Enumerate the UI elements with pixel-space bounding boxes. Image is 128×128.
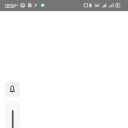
- staticText: 08:58: [5, 3, 14, 9]
- button[interactable]: Notifications: [5, 81, 20, 97]
- button[interactable]: Voice input: [5, 101, 20, 128]
